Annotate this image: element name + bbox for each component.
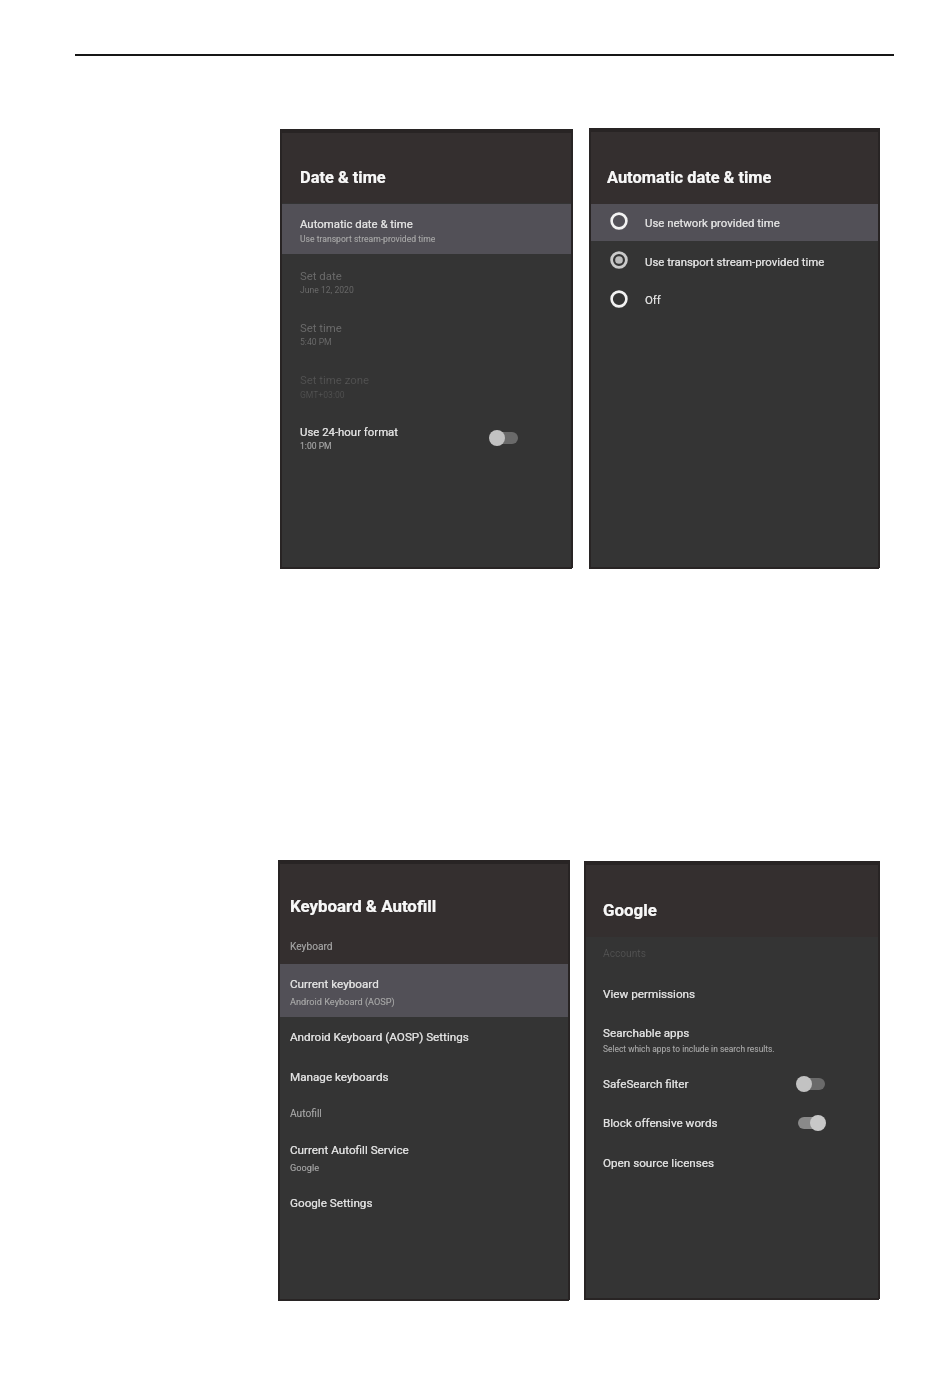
button[interactable]: Switch off bbox=[489, 430, 519, 446]
staticText: Select which apps to include in search r… bbox=[603, 1044, 775, 1054]
staticText: Set time zone bbox=[300, 373, 370, 386]
button[interactable]: Set date bbox=[280, 254, 572, 305]
staticText: Keyboard & Autofill bbox=[290, 896, 437, 916]
staticText: Use transport stream-provided time bbox=[300, 234, 436, 244]
button[interactable]: Current keyboard bbox=[278, 964, 569, 1017]
button[interactable]: SafeSearch filter bbox=[584, 1061, 879, 1101]
button[interactable]: Android Keyboard (AOSP) Settings bbox=[278, 1017, 569, 1057]
staticText: Use network provided time bbox=[645, 216, 780, 229]
staticText: Google bbox=[290, 1162, 320, 1173]
staticText: GMT+03:00 bbox=[300, 390, 345, 400]
button[interactable]: Searchable apps bbox=[584, 1013, 879, 1055]
staticText: Android Keyboard (AOSP) bbox=[290, 996, 395, 1007]
button[interactable]: Block offensive words bbox=[584, 1101, 879, 1141]
staticText: Automatic date & time bbox=[300, 217, 413, 230]
other: Not selected bbox=[609, 289, 629, 309]
staticText: Set time bbox=[300, 321, 342, 334]
button[interactable]: Open source licenses bbox=[584, 1143, 879, 1183]
staticText: Google bbox=[603, 900, 657, 920]
button[interactable]: Off bbox=[589, 280, 879, 318]
button[interactable]: Set time zone bbox=[280, 359, 572, 409]
staticText: Current Autofill Service bbox=[290, 1143, 409, 1157]
staticText: Date & time bbox=[300, 168, 386, 187]
staticText: Block offensive words bbox=[603, 1116, 718, 1130]
other: Selected bbox=[609, 250, 629, 270]
staticText: View permissions bbox=[603, 987, 696, 1001]
staticText: Open source licenses bbox=[603, 1156, 715, 1170]
button[interactable]: Use 24-hour format bbox=[280, 411, 572, 461]
staticText: 5:40 PM bbox=[300, 337, 332, 347]
button[interactable]: View permissions bbox=[584, 975, 879, 1013]
staticText: Autofill bbox=[290, 1108, 322, 1120]
staticText: June 12, 2020 bbox=[300, 285, 354, 295]
staticText: Google Settings bbox=[290, 1196, 373, 1210]
staticText: SafeSearch filter bbox=[603, 1077, 689, 1091]
staticText: Use 24-hour format bbox=[300, 425, 399, 438]
button[interactable]: Set time bbox=[280, 307, 572, 357]
button[interactable]: Use transport stream-provided time bbox=[589, 241, 879, 280]
button[interactable]: Automatic date & time bbox=[280, 204, 572, 254]
staticText: Current keyboard bbox=[290, 977, 379, 991]
button[interactable]: Google Settings bbox=[278, 1185, 569, 1223]
staticText: Manage keyboards bbox=[290, 1070, 389, 1084]
staticText: Set date bbox=[300, 269, 342, 282]
staticText: Searchable apps bbox=[603, 1026, 690, 1040]
staticText: Automatic date & time bbox=[607, 168, 772, 187]
button[interactable]: Switch on bbox=[796, 1115, 826, 1131]
button[interactable]: Current Autofill Service bbox=[278, 1132, 569, 1176]
button[interactable]: Switch off bbox=[796, 1076, 826, 1092]
staticText: Off bbox=[645, 293, 661, 306]
other: Not selected bbox=[609, 211, 629, 231]
staticText: 1:00 PM bbox=[300, 441, 332, 451]
staticText: Keyboard bbox=[290, 941, 333, 953]
staticText: Android Keyboard (AOSP) Settings bbox=[290, 1030, 469, 1044]
button[interactable]: Manage keyboards bbox=[278, 1057, 569, 1097]
staticText: Accounts bbox=[603, 948, 646, 960]
button[interactable]: Use network provided time bbox=[589, 204, 879, 241]
staticText: Use transport stream-provided time bbox=[645, 255, 825, 268]
